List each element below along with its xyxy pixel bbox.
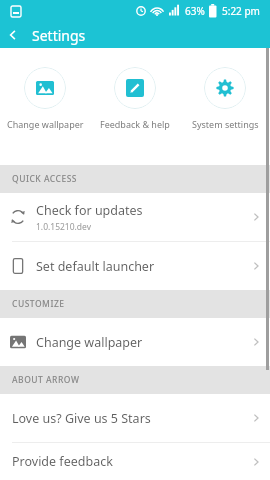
staticText: System settings [192, 118, 259, 130]
staticText: Love us? Give us 5 Stars [12, 410, 151, 427]
staticText: Feedback & help [100, 118, 170, 130]
button[interactable]: Back [0, 22, 26, 48]
button[interactable]: Check for updates [0, 193, 270, 241]
button[interactable]: Change wallpaper [0, 48, 90, 148]
staticText: CUSTOMIZE [12, 298, 65, 310]
staticText: Change wallpaper [7, 118, 84, 130]
staticText: ABOUT ARROW [12, 374, 80, 386]
staticText: 1.0.15210.dev [36, 221, 92, 233]
button[interactable]: Love us? Give us 5 Stars [0, 394, 270, 442]
staticText: Provide feedback [12, 453, 113, 470]
button[interactable]: System settings [180, 48, 270, 148]
button[interactable]: Feedback & help [90, 48, 180, 148]
button[interactable]: Provide feedback [0, 443, 270, 480]
staticText: Set default launcher [36, 258, 155, 275]
button[interactable]: Change wallpaper [0, 318, 270, 366]
staticText: Change wallpaper [36, 334, 143, 351]
staticText: 5:22 pm [222, 4, 260, 18]
staticText: Settings [32, 26, 86, 45]
staticText: 63% [185, 4, 205, 18]
button[interactable]: Set default launcher [0, 242, 270, 290]
staticText: Check for updates [36, 202, 143, 219]
staticText: QUICK ACCESS [12, 173, 78, 185]
